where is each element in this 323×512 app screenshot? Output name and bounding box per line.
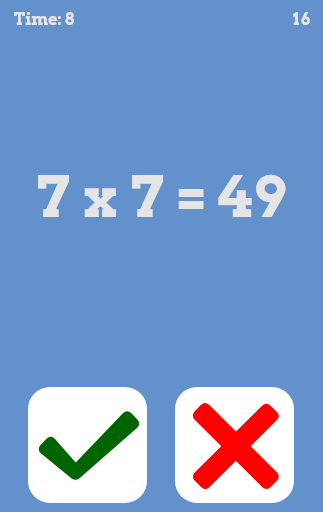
button[interactable]: False [175, 387, 294, 503]
staticText: 7 x 7 = 49 [37, 162, 287, 231]
staticText: 16 [293, 10, 312, 29]
staticText: Time: 8 [14, 10, 75, 29]
button[interactable]: True [28, 387, 147, 503]
